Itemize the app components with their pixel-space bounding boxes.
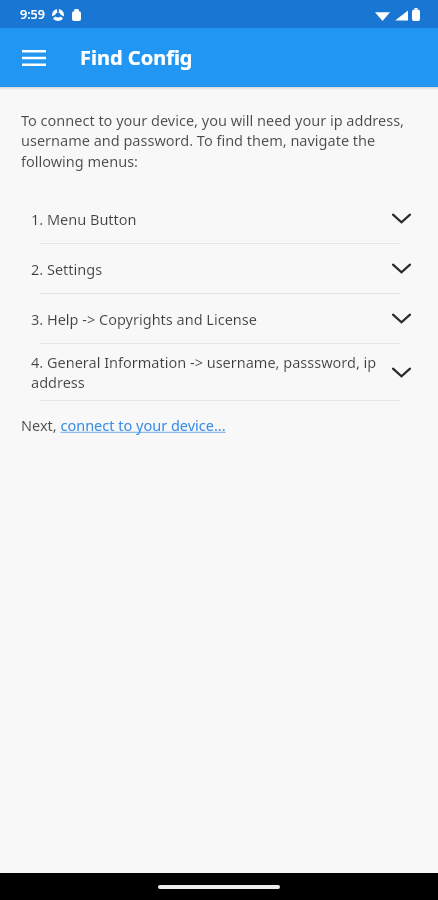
staticText: 9:59 xyxy=(20,6,45,23)
staticText: Next, connect to your device... xyxy=(21,415,226,435)
staticText: 2. Settings xyxy=(31,259,383,279)
button[interactable]: Next, connect to your device... xyxy=(21,415,226,435)
button[interactable]: Open navigation menu xyxy=(10,34,58,82)
staticText: Find Config xyxy=(80,44,193,71)
staticText: 1. Menu Button xyxy=(31,209,383,229)
button[interactable]: 3. Help -> Copyrights and License xyxy=(0,294,438,343)
staticText: 3. Help -> Copyrights and License xyxy=(31,309,383,329)
staticText: To connect to your device, you will need… xyxy=(21,110,414,172)
button[interactable]: 1. Menu Button xyxy=(0,194,438,243)
button[interactable]: 4. General Information -> username, pass… xyxy=(0,344,438,400)
staticText: 4. General Information -> username, pass… xyxy=(31,352,383,392)
button[interactable]: 2. Settings xyxy=(0,244,438,293)
